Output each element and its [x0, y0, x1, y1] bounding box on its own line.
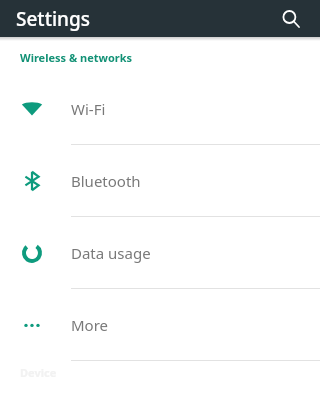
- button[interactable]: Search: [274, 2, 308, 36]
- staticText: Data usage: [71, 243, 151, 263]
- staticText: Wi-Fi: [71, 99, 106, 119]
- staticText: Bluetooth: [71, 171, 141, 191]
- staticText: Device: [20, 365, 57, 380]
- button[interactable]: Bluetooth: [0, 145, 320, 216]
- button[interactable]: Data usage: [0, 217, 320, 288]
- button[interactable]: More: [0, 289, 320, 360]
- button[interactable]: Wi-Fi: [0, 73, 320, 144]
- staticText: More: [71, 315, 109, 335]
- staticText: Wireless & networks: [20, 50, 133, 65]
- staticText: Settings: [16, 6, 90, 32]
